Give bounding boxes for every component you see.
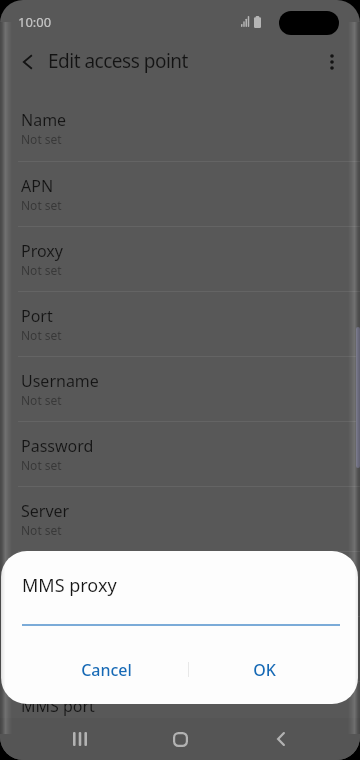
- staticText: Proxy: [21, 240, 63, 262]
- button[interactable]: Server: [0, 487, 360, 551]
- staticText: Cancel: [81, 659, 132, 681]
- button[interactable]: MMS proxy: [0, 617, 360, 681]
- staticText: 10:00: [18, 13, 52, 31]
- button[interactable]: OK: [210, 649, 318, 691]
- button[interactable]: Cancel: [52, 649, 160, 691]
- staticText: Not set: [21, 197, 62, 213]
- button[interactable]: MMS port: [0, 682, 360, 746]
- button[interactable]: Name: [0, 96, 360, 161]
- button[interactable]: More options: [310, 40, 354, 84]
- staticText: Server: [21, 500, 70, 522]
- button[interactable]: Proxy: [0, 227, 360, 291]
- button[interactable]: Port: [0, 292, 360, 356]
- staticText: Not set: [21, 392, 62, 408]
- button[interactable]: Home: [145, 716, 215, 760]
- staticText: Port: [21, 305, 53, 327]
- staticText: Not set: [21, 457, 62, 473]
- staticText: APN: [21, 175, 54, 197]
- button[interactable]: Recent apps: [45, 716, 115, 760]
- staticText: Not set: [21, 131, 62, 147]
- button[interactable]: Username: [0, 357, 360, 421]
- staticText: Not set: [21, 522, 62, 538]
- button[interactable]: Back: [246, 716, 316, 760]
- button[interactable]: MCC: [0, 747, 360, 760]
- staticText: MMS port: [21, 695, 95, 717]
- staticText: Password: [21, 435, 94, 457]
- button[interactable]: APN: [0, 162, 360, 226]
- button[interactable]: Password: [0, 422, 360, 486]
- staticText: MMSC: [21, 565, 69, 587]
- button[interactable]: MMSC: [0, 552, 360, 616]
- button[interactable]: Navigate up: [3, 38, 51, 86]
- staticText: Edit access point: [48, 48, 188, 74]
- staticText: Name: [21, 109, 67, 131]
- staticText: Not set: [21, 262, 62, 278]
- staticText: MMS proxy: [22, 573, 117, 598]
- staticText: Not set: [21, 587, 62, 603]
- staticText: OK: [253, 659, 276, 681]
- staticText: Username: [21, 370, 99, 392]
- staticText: Not set: [21, 327, 62, 343]
